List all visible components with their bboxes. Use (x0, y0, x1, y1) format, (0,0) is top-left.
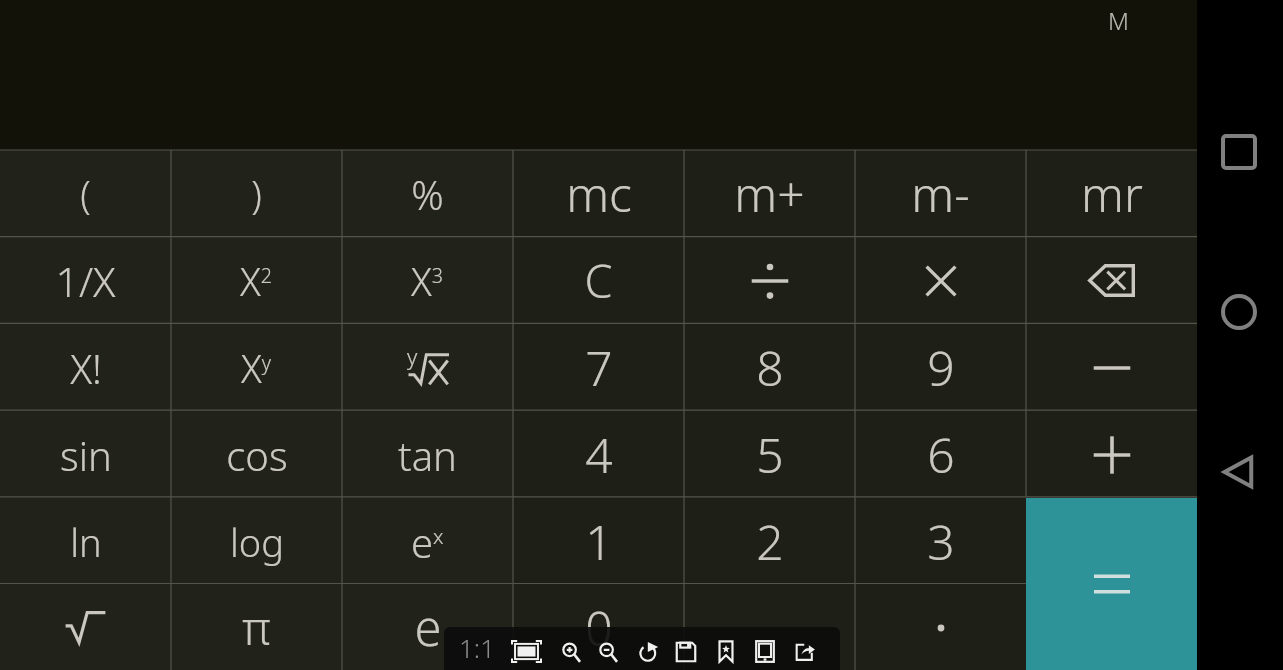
button[interactable]: ln (0, 498, 171, 585)
staticText: 0 (585, 595, 613, 660)
button[interactable]: 4 (513, 411, 684, 498)
staticText: π (242, 596, 271, 659)
staticText: e (414, 594, 442, 661)
staticText: ln (70, 516, 102, 568)
button[interactable]: Nth root (342, 324, 513, 411)
staticText: y (407, 341, 418, 371)
button[interactable]: cos (171, 411, 342, 498)
button[interactable]: ex (342, 498, 513, 585)
staticText: 6 (927, 422, 955, 487)
button[interactable]: ( (0, 150, 171, 237)
staticText: m+ (734, 161, 805, 226)
other: Minus (1087, 343, 1137, 393)
button[interactable]: X3 (342, 237, 513, 324)
staticText: tan (398, 428, 457, 482)
staticText: Xy (241, 342, 272, 394)
button[interactable] (1026, 498, 1197, 585)
staticText: 4 (585, 422, 613, 487)
button[interactable]: m- (855, 150, 1026, 237)
button[interactable]: Multiply (855, 237, 1026, 324)
button[interactable]: 0 (513, 585, 684, 670)
button[interactable]: Equals (1026, 497, 1197, 670)
button[interactable]: Share (786, 627, 824, 670)
staticText: C (584, 250, 613, 311)
button[interactable] (1026, 585, 1197, 670)
button[interactable]: sin (0, 411, 171, 498)
button[interactable]: 1:1 (458, 627, 496, 670)
button[interactable]: 9 (855, 324, 1026, 411)
staticText: ex (411, 515, 444, 569)
button[interactable]: mr (1026, 150, 1197, 237)
button[interactable]: Xy (171, 324, 342, 411)
button[interactable]: 7 (513, 324, 684, 411)
button[interactable]: e (342, 585, 513, 670)
other: Plus (1087, 430, 1137, 480)
button[interactable]: Divide (684, 237, 855, 324)
other: Backspace (1088, 264, 1135, 297)
staticText: cos (226, 428, 288, 482)
button[interactable]: 2 (684, 498, 855, 585)
staticText: 9 (927, 335, 955, 400)
button[interactable]: m+ (684, 150, 855, 237)
staticText: mr (1081, 161, 1143, 226)
staticText: 2 (756, 509, 784, 574)
staticText: ( (80, 168, 91, 220)
staticText: sin (60, 428, 112, 482)
staticText: 3 (927, 509, 955, 574)
button[interactable]: X! (0, 324, 171, 411)
staticText: m- (911, 161, 970, 226)
button[interactable]: Save (667, 627, 705, 670)
button[interactable]: Home (1215, 288, 1263, 336)
staticText: mc (566, 161, 632, 226)
staticText: 8 (756, 335, 784, 400)
button[interactable] (684, 585, 855, 670)
other: Decimal point (935, 622, 947, 634)
button[interactable]: Fit to screen (507, 627, 545, 670)
button[interactable]: Square root (0, 585, 171, 670)
button[interactable]: Bookmark (707, 627, 745, 670)
staticText: 1/X (55, 253, 116, 309)
other: Nth root (407, 351, 449, 385)
staticText: 5 (756, 422, 784, 487)
staticText: ) (251, 168, 262, 220)
staticText: % (411, 167, 444, 221)
button[interactable]: 8 (684, 324, 855, 411)
staticText: 7 (585, 335, 613, 400)
button[interactable]: 6 (855, 411, 1026, 498)
button[interactable]: X2 (171, 237, 342, 324)
button[interactable]: 3 (855, 498, 1026, 585)
button[interactable]: Zoom out (589, 627, 627, 670)
staticText: M (1108, 4, 1129, 37)
button[interactable]: 1 (513, 498, 684, 585)
button[interactable]: Minus (1026, 324, 1197, 411)
button[interactable]: Rotate (630, 627, 668, 670)
button[interactable]: Backspace (1026, 237, 1197, 324)
button[interactable]: ) (171, 150, 342, 237)
button[interactable]: Plus (1026, 411, 1197, 498)
staticText: 1:1 (459, 630, 496, 665)
button[interactable]: Decimal point (855, 585, 1026, 670)
staticText: 1 (585, 509, 613, 574)
staticText: X2 (240, 255, 273, 307)
button[interactable]: C (513, 237, 684, 324)
button[interactable]: 1/X (0, 237, 171, 324)
button[interactable]: Zoom in (552, 627, 590, 670)
staticText: X3 (411, 255, 444, 307)
button[interactable]: mc (513, 150, 684, 237)
button[interactable]: π (171, 585, 342, 670)
staticText: log (230, 516, 284, 568)
button[interactable]: Recents (1215, 128, 1263, 176)
button[interactable]: % (342, 150, 513, 237)
button[interactable]: Device (746, 627, 784, 670)
other: Divide (745, 256, 795, 306)
button[interactable]: log (171, 498, 342, 585)
button[interactable]: tan (342, 411, 513, 498)
button[interactable]: Back (1215, 448, 1263, 496)
other: Multiply (916, 256, 966, 306)
staticText: X! (70, 341, 102, 395)
button[interactable]: 5 (684, 411, 855, 498)
other: Square root (64, 611, 107, 644)
